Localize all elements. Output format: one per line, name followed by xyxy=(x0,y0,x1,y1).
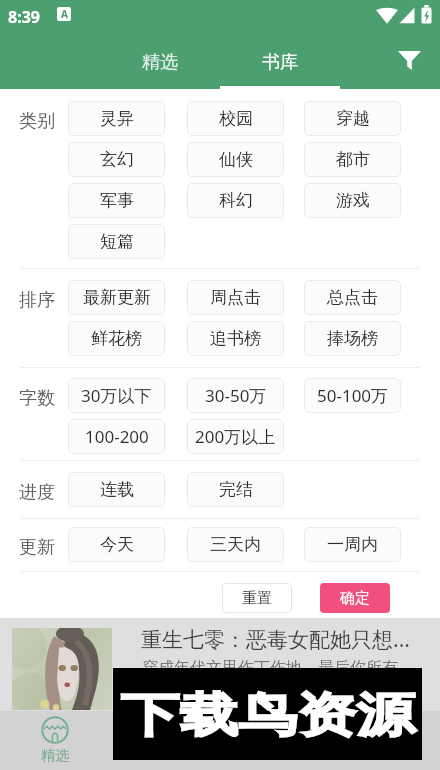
button[interactable]: 军事 xyxy=(68,183,165,218)
button[interactable]: 都市 xyxy=(304,142,401,177)
button[interactable]: 完结 xyxy=(187,472,284,507)
staticText: 灵异 xyxy=(100,108,134,129)
button[interactable]: 鲜花榜 xyxy=(68,321,165,356)
staticText: 追书榜 xyxy=(210,328,261,349)
staticText: 今天 xyxy=(100,534,134,555)
button[interactable]: 精选 xyxy=(20,716,90,765)
button[interactable]: 短篇 xyxy=(68,224,165,259)
button[interactable]: 100-200 xyxy=(68,419,165,454)
button[interactable]: 50-100万 xyxy=(304,378,401,413)
button[interactable]: 一周内 xyxy=(304,527,401,562)
button[interactable]: 200万以上 xyxy=(187,419,284,454)
button[interactable]: 科幻 xyxy=(187,183,284,218)
button[interactable]: 周点击 xyxy=(187,280,284,315)
button[interactable]: 连载 xyxy=(68,472,165,507)
staticText: 30-50万 xyxy=(205,384,267,407)
staticText: 玄幻 xyxy=(100,149,134,170)
button[interactable]: 书库 xyxy=(220,38,340,87)
button[interactable]: 最新更新 xyxy=(68,280,165,315)
staticText: 穿成年代文里作丁作地，最后你所有 xyxy=(142,658,398,678)
staticText: 精选 xyxy=(41,747,69,765)
staticText: 100-200 xyxy=(85,425,149,448)
staticText: 连载 xyxy=(100,479,134,500)
button[interactable]: 玄幻 xyxy=(68,142,165,177)
staticText: 下载鸟资源 xyxy=(121,687,415,745)
staticText: 游戏 xyxy=(336,190,370,211)
staticText: 30万以下 xyxy=(81,384,152,407)
staticText: 8:39 xyxy=(8,6,40,28)
button[interactable]: 30-50万 xyxy=(187,378,284,413)
staticText: 更新 xyxy=(19,536,55,559)
staticText: 都市 xyxy=(336,149,370,170)
button[interactable]: 追书榜 xyxy=(187,321,284,356)
staticText: 穿越 xyxy=(336,108,370,129)
staticText: 鲜花榜 xyxy=(91,328,142,349)
staticText: 最新更新 xyxy=(83,287,151,308)
staticText: 字数 xyxy=(19,387,55,410)
button[interactable]: 灵异 xyxy=(68,101,165,136)
staticText: 仙侠 xyxy=(219,149,253,170)
button[interactable]: 总点击 xyxy=(304,280,401,315)
button[interactable]: 今天 xyxy=(68,527,165,562)
staticText: 短篇 xyxy=(100,231,134,252)
staticText: 重置 xyxy=(242,589,272,608)
staticText: 科幻 xyxy=(219,190,253,211)
staticText: 书库 xyxy=(262,51,298,74)
staticText: 校园 xyxy=(219,108,253,129)
button[interactable]: 游戏 xyxy=(304,183,401,218)
button[interactable]: 重置 xyxy=(222,583,292,613)
button[interactable]: 仙侠 xyxy=(187,142,284,177)
staticText: 确定 xyxy=(340,589,370,608)
button[interactable]: 校园 xyxy=(187,101,284,136)
staticText: A xyxy=(61,7,68,21)
staticText: 排序 xyxy=(19,289,55,312)
staticText: 总点击 xyxy=(327,287,378,308)
button[interactable]: 捧场榜 xyxy=(304,321,401,356)
staticText: 捧场榜 xyxy=(327,328,378,349)
staticText: 进度 xyxy=(19,481,55,504)
staticText: 军事 xyxy=(100,190,134,211)
button[interactable]: 三天内 xyxy=(187,527,284,562)
staticText: 50-100万 xyxy=(317,384,389,407)
staticText: 精选 xyxy=(142,51,178,74)
button[interactable]: 30万以下 xyxy=(68,378,165,413)
staticText: 200万以上 xyxy=(195,425,276,448)
staticText: 周点击 xyxy=(210,287,261,308)
staticText: 类别 xyxy=(19,110,55,133)
staticText: 完结 xyxy=(219,479,253,500)
staticText: 重生七零：恶毒女配她只想... xyxy=(141,625,410,654)
button[interactable]: Filter xyxy=(386,36,432,85)
button[interactable]: 精选 xyxy=(100,38,220,87)
staticText: 三天内 xyxy=(210,534,261,555)
button[interactable]: 穿越 xyxy=(304,101,401,136)
button[interactable]: 确定 xyxy=(320,583,390,613)
staticText: 一周内 xyxy=(327,534,378,555)
